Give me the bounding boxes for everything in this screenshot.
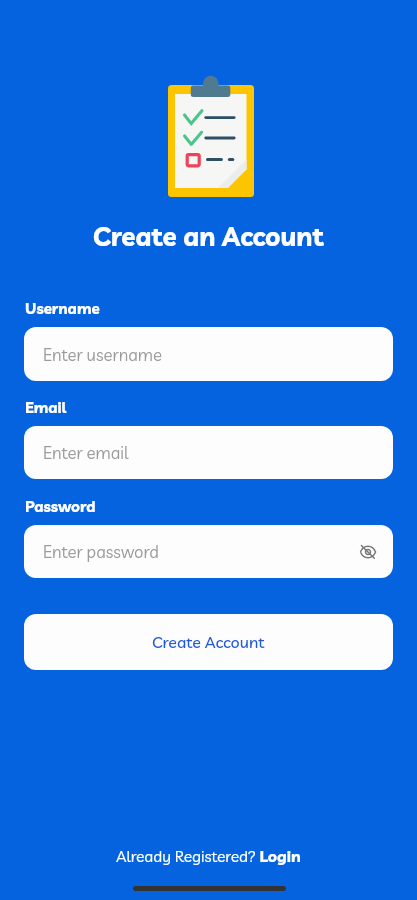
staticText: Password xyxy=(25,497,96,516)
staticText: Create Account xyxy=(152,632,265,652)
button[interactable]: Create Account xyxy=(24,614,393,670)
staticText: Username xyxy=(25,299,100,318)
staticText: Enter password xyxy=(43,541,159,562)
staticText: Enter username xyxy=(43,344,162,365)
staticText: Enter email xyxy=(43,442,129,463)
staticText: Email xyxy=(25,398,67,417)
button[interactable]: Enter email xyxy=(24,426,393,479)
button[interactable]: Enter password xyxy=(24,525,393,578)
staticText: Already Registered? Login xyxy=(116,846,301,866)
button[interactable]: Enter username xyxy=(24,327,393,381)
staticText: Create an Account xyxy=(93,220,324,253)
button[interactable]: Show password xyxy=(348,525,388,578)
button[interactable]: Already Registered? Login xyxy=(116,846,301,866)
